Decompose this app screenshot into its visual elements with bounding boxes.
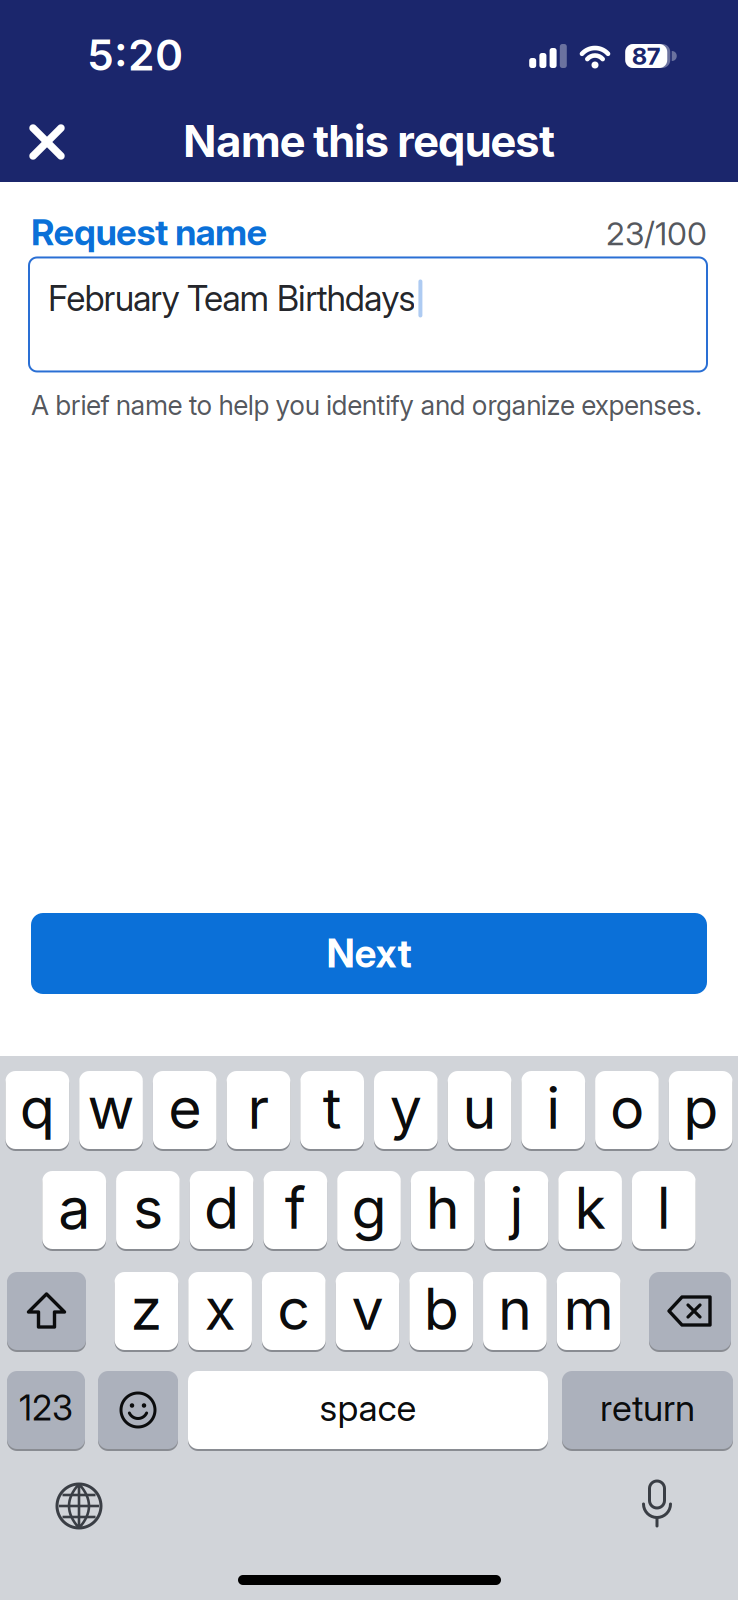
staticText: a bbox=[58, 1174, 90, 1242]
button[interactable]: u bbox=[448, 1070, 511, 1150]
button[interactable]: e bbox=[153, 1070, 217, 1150]
button[interactable]: space bbox=[188, 1370, 548, 1450]
staticText: v bbox=[351, 1275, 383, 1343]
button[interactable]: Numbers bbox=[7, 1370, 85, 1450]
button[interactable]: v bbox=[336, 1271, 399, 1351]
staticText: o bbox=[610, 1074, 644, 1142]
staticText: space bbox=[319, 1387, 416, 1429]
button[interactable]: c bbox=[262, 1271, 326, 1351]
staticText: w bbox=[88, 1074, 135, 1142]
button[interactable]: y bbox=[374, 1070, 438, 1150]
button[interactable]: Emoji bbox=[98, 1370, 178, 1450]
staticText: n bbox=[498, 1275, 532, 1343]
button[interactable]: p bbox=[669, 1070, 732, 1150]
staticText: c bbox=[277, 1275, 310, 1343]
staticText: z bbox=[130, 1275, 162, 1343]
staticText: r bbox=[247, 1074, 269, 1142]
button[interactable]: k bbox=[558, 1170, 622, 1250]
button[interactable]: s bbox=[116, 1170, 180, 1250]
staticText: A brief name to help you identify and or… bbox=[31, 389, 702, 421]
staticText: return bbox=[600, 1387, 695, 1429]
staticText: 23/100 bbox=[606, 215, 707, 253]
staticText: 87 bbox=[632, 42, 661, 70]
staticText: Name this request bbox=[183, 115, 555, 167]
staticText: t bbox=[323, 1074, 342, 1142]
button[interactable]: l bbox=[632, 1170, 696, 1250]
staticText: f bbox=[285, 1174, 306, 1242]
staticText: l bbox=[657, 1174, 671, 1242]
staticText: Next bbox=[326, 931, 411, 976]
button[interactable]: a bbox=[42, 1170, 106, 1250]
button[interactable]: m bbox=[557, 1271, 620, 1351]
staticText: s bbox=[133, 1174, 163, 1242]
button[interactable]: z bbox=[115, 1271, 178, 1351]
staticText: Request name bbox=[31, 211, 267, 253]
button[interactable]: Request name text field bbox=[29, 257, 707, 371]
staticText: i bbox=[546, 1074, 560, 1142]
staticText: u bbox=[463, 1074, 497, 1142]
staticText: e bbox=[168, 1074, 201, 1142]
button[interactable]: t bbox=[300, 1070, 364, 1150]
button[interactable]: r bbox=[227, 1070, 290, 1150]
staticText: 5:20 bbox=[87, 30, 183, 80]
button[interactable]: q bbox=[5, 1070, 69, 1150]
button[interactable]: g bbox=[337, 1170, 401, 1250]
button[interactable]: i bbox=[521, 1070, 585, 1150]
button[interactable]: Shift bbox=[7, 1271, 86, 1351]
button[interactable]: x bbox=[188, 1271, 252, 1351]
button[interactable]: return bbox=[562, 1370, 733, 1450]
staticText: q bbox=[20, 1074, 55, 1142]
button[interactable]: d bbox=[190, 1170, 253, 1250]
button[interactable]: f bbox=[263, 1170, 327, 1250]
staticText: m bbox=[564, 1275, 614, 1343]
staticText: 123 bbox=[19, 1388, 73, 1428]
button[interactable]: n bbox=[483, 1271, 547, 1351]
button[interactable]: j bbox=[485, 1170, 548, 1250]
staticText: k bbox=[575, 1174, 606, 1242]
staticText: b bbox=[424, 1275, 459, 1343]
staticText: x bbox=[205, 1275, 236, 1343]
button[interactable]: w bbox=[79, 1070, 143, 1150]
button[interactable]: Next bbox=[31, 913, 707, 994]
button[interactable]: Delete bbox=[649, 1271, 731, 1351]
button[interactable]: Dictation bbox=[638, 1480, 676, 1528]
staticText: j bbox=[509, 1174, 523, 1242]
button[interactable]: Close bbox=[27, 122, 67, 162]
button[interactable]: o bbox=[595, 1070, 659, 1150]
button[interactable]: h bbox=[411, 1170, 475, 1250]
button[interactable]: Next keyboard bbox=[57, 1484, 101, 1528]
staticText: p bbox=[683, 1074, 718, 1142]
staticText: d bbox=[204, 1174, 239, 1242]
staticText: y bbox=[390, 1074, 422, 1142]
staticText: h bbox=[426, 1174, 460, 1242]
button[interactable]: b bbox=[409, 1271, 473, 1351]
staticText: February Team Birthdays bbox=[48, 278, 415, 319]
staticText: g bbox=[351, 1174, 386, 1242]
